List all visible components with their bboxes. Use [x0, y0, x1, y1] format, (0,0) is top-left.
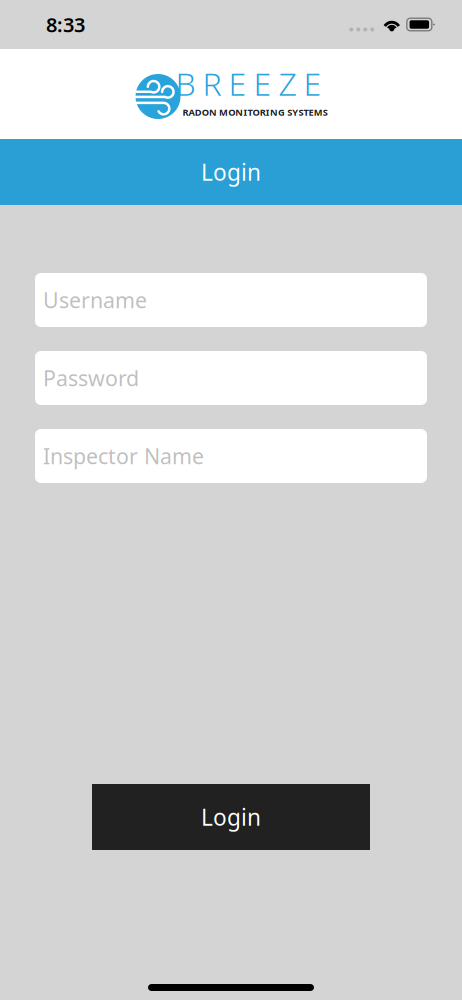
- button[interactable]: Login: [92, 784, 370, 850]
- button[interactable]: Username: [35, 273, 427, 327]
- staticText: Login: [201, 157, 261, 187]
- staticText: RADON MONITORING SYSTEMS: [182, 106, 328, 118]
- button[interactable]: Password: [35, 351, 427, 405]
- staticText: Username: [43, 286, 147, 314]
- staticText: Login: [201, 802, 261, 832]
- staticText: BREEZE: [175, 62, 321, 104]
- button[interactable]: Inspector Name: [35, 429, 427, 483]
- staticText: Password: [43, 364, 139, 392]
- staticText: Inspector Name: [43, 442, 204, 470]
- staticText: 8:33: [46, 11, 85, 38]
